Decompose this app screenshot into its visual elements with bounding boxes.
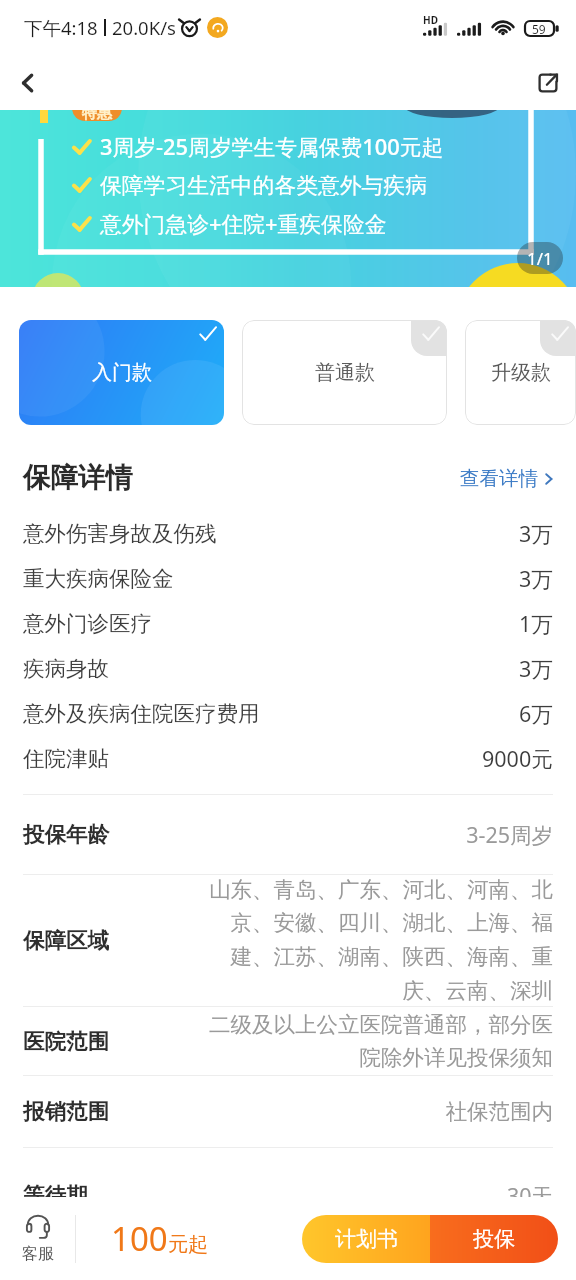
staticText: 医院范围 [23, 1028, 109, 1055]
staticText: 3万 [519, 519, 553, 548]
staticText: 3万 [519, 564, 553, 593]
button[interactable]: 投保 [430, 1215, 558, 1263]
button[interactable]: 升级款 [465, 320, 576, 425]
staticText: 6万 [519, 699, 553, 728]
staticText: 住院津贴 [23, 745, 109, 772]
button[interactable]: 意外门诊医疗 [0, 601, 576, 646]
button[interactable]: 入门款 [19, 320, 224, 425]
staticText: 意外门诊医疗 [23, 610, 152, 637]
staticText: 意外门急诊+住院+重疾保险金 [100, 209, 387, 239]
button[interactable]: 计划书 [302, 1215, 430, 1263]
staticText: 投保年龄 [23, 821, 109, 848]
staticText: 保障详情 [23, 461, 133, 496]
staticText: 入门款 [92, 360, 152, 385]
staticText: 重大疾病保险金 [23, 565, 174, 592]
button[interactable]: 意外及疾病住院医疗费用 [0, 691, 576, 736]
staticText: 疾病身故 [23, 655, 109, 682]
staticText: 客服 [22, 1244, 54, 1264]
staticText: 3周岁-25周岁学生专属保费100元起 [100, 132, 444, 162]
staticText: 特惠 [82, 110, 112, 121]
staticText: 59 [532, 21, 546, 37]
button[interactable]: 投保年龄 [0, 795, 576, 874]
staticText: 查看详情 [460, 466, 538, 491]
staticText: 100 [111, 1216, 168, 1261]
staticText: 意外及疾病住院医疗费用 [23, 700, 260, 727]
staticText: 保障学习生活中的各类意外与疾病 [100, 172, 427, 199]
staticText: 元起 [168, 1232, 208, 1257]
staticText: 投保 [473, 1226, 515, 1252]
button[interactable]: 查看详情 [450, 458, 576, 499]
button[interactable]: Share [520, 55, 576, 110]
staticText: 等待期 [23, 1182, 88, 1209]
staticText: 30天 [205, 1181, 553, 1210]
button[interactable]: 客服 [0, 1197, 75, 1280]
staticText: 山东、青岛、广东、河北、河南、北京、安徽、四川、湖北、上海、福建、江苏、湖南、陕… [205, 876, 553, 1005]
staticText: 下午4:18 [24, 15, 98, 40]
staticText: 报销范围 [23, 1098, 109, 1125]
staticText: 社保范围内 [205, 1098, 553, 1125]
staticText: 3万 [519, 654, 553, 683]
staticText: 1万 [519, 609, 553, 638]
staticText: 3-25周岁 [205, 820, 553, 849]
staticText: 保障区域 [23, 927, 109, 954]
staticText: 普通款 [315, 360, 375, 385]
button[interactable]: 疾病身故 [0, 646, 576, 691]
staticText: 升级款 [491, 360, 551, 385]
button[interactable]: 普通款 [242, 320, 447, 425]
button[interactable]: 报销范围 [0, 1076, 576, 1147]
staticText: 意外伤害身故及伤残 [23, 520, 217, 547]
button[interactable]: 意外伤害身故及伤残 [0, 511, 576, 556]
staticText: 9000元 [482, 744, 553, 773]
staticText: 二级及以上公立医院普通部，部分医院除外详见投保须知 [205, 1011, 553, 1072]
staticText: HD [423, 13, 438, 27]
staticText: 20.0K/s [112, 15, 176, 40]
button[interactable]: Back [0, 55, 56, 110]
staticText: 1/1 [527, 247, 553, 270]
staticText: 计划书 [335, 1226, 398, 1252]
button[interactable]: 重大疾病保险金 [0, 556, 576, 601]
button[interactable]: 医院范围 [0, 1007, 576, 1075]
button[interactable]: 保障区域 [0, 875, 576, 1006]
button[interactable]: 住院津贴 [0, 736, 576, 781]
button[interactable]: 等待期 [0, 1148, 576, 1243]
